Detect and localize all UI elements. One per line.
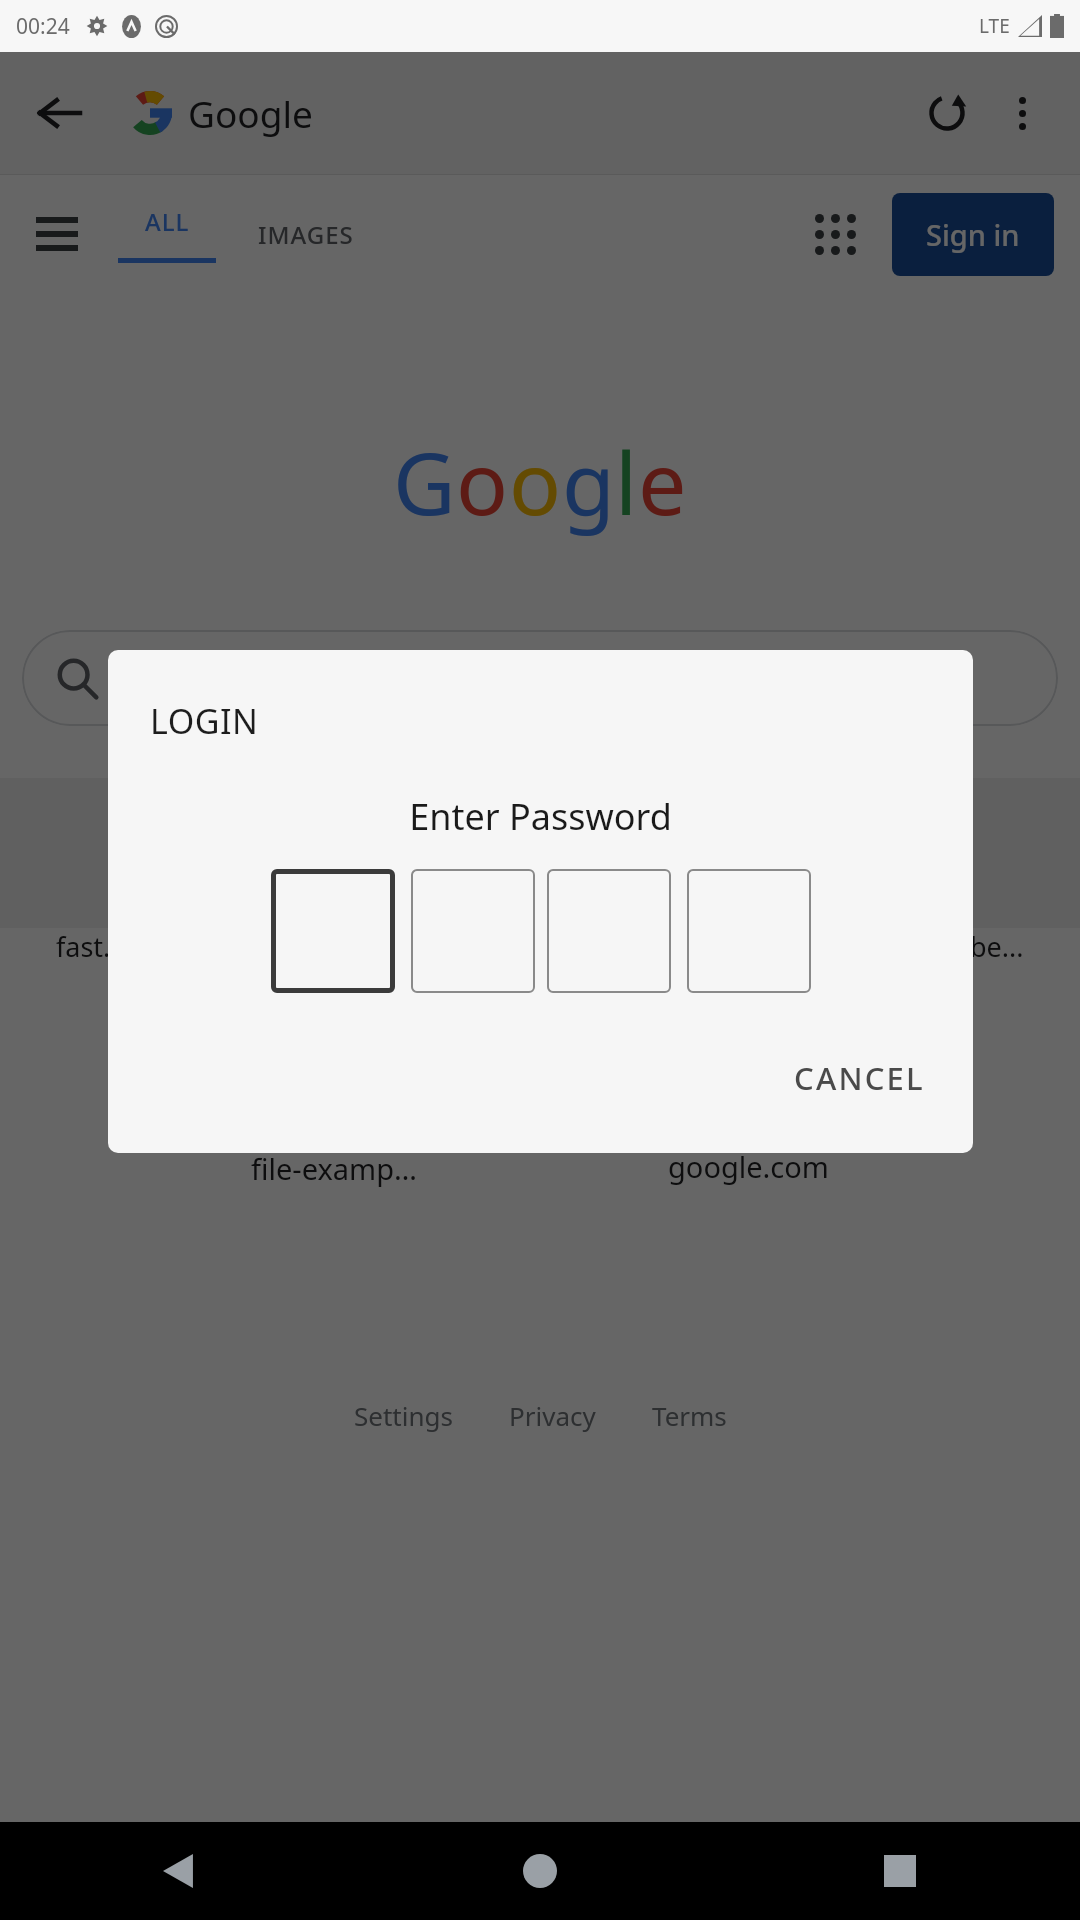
button[interactable]: Recents [720, 1822, 1080, 1920]
button[interactable]: More options [994, 85, 1050, 141]
staticText: o [456, 423, 509, 540]
button[interactable]: Password digit [687, 869, 811, 993]
staticText: l [615, 423, 638, 540]
button[interactable]: google.com [668, 1061, 829, 1186]
staticText: google.com [668, 1147, 829, 1186]
button[interactable]: FEx [251, 1061, 417, 1188]
staticText: G [393, 423, 456, 540]
staticText: LOGIN [150, 698, 259, 744]
staticText: CANCEL [794, 1057, 925, 1099]
button[interactable]: Back [0, 1822, 360, 1920]
button[interactable]: IMAGES [258, 218, 354, 251]
staticText: file-examp… [251, 1149, 417, 1188]
staticText: LTE [979, 13, 1010, 39]
button[interactable]: Password digit [547, 869, 671, 993]
staticText: fast... [56, 928, 125, 965]
staticText: o [509, 423, 562, 540]
staticText: Google [188, 88, 313, 138]
button[interactable]: Home [360, 1822, 720, 1920]
staticText: g [562, 423, 615, 540]
button[interactable]: Back [30, 83, 90, 143]
button[interactable]: Reload [916, 82, 978, 144]
button[interactable]: Menu [26, 203, 88, 265]
button[interactable]: ALL [118, 205, 216, 263]
staticText: ALL [145, 205, 190, 238]
staticText: be... [970, 928, 1024, 965]
staticText: Settings [354, 1398, 453, 1433]
button[interactable]: CANCEL [768, 1037, 951, 1119]
staticText: Enter Password [108, 792, 973, 841]
staticText: Privacy [509, 1398, 596, 1433]
button[interactable]: Password digit [411, 869, 535, 993]
staticText: IMAGES [258, 218, 354, 251]
button[interactable] [22, 630, 1058, 726]
button[interactable]: Password digit [271, 869, 395, 993]
staticText: 00:24 [16, 12, 70, 41]
button[interactable]: Sign in [892, 193, 1054, 276]
button[interactable]: Apps [800, 199, 870, 269]
staticText: e [638, 423, 687, 540]
staticText: Terms [652, 1398, 727, 1433]
staticText: Sign in [926, 215, 1020, 254]
